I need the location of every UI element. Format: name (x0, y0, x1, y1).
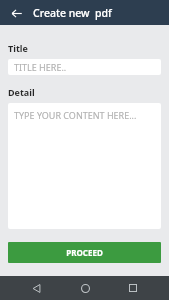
button[interactable]: PROCEED (8, 242, 161, 263)
staticText: Create new pdf (33, 6, 112, 20)
staticText: PROCEED (66, 247, 103, 258)
button[interactable]: Recent apps (121, 276, 145, 300)
button[interactable]: Back (24, 276, 48, 300)
button[interactable]: TITLE HERE.. (8, 59, 161, 75)
staticText: TYPE YOUR CONTENT HERE... (14, 109, 137, 121)
button[interactable]: TYPE YOUR CONTENT HERE... (8, 103, 161, 229)
staticText: TITLE HERE.. (14, 61, 67, 73)
staticText: Detail (8, 86, 35, 98)
staticText: Title (8, 42, 28, 54)
button[interactable]: Back (7, 4, 25, 22)
button[interactable]: Home (73, 276, 97, 300)
